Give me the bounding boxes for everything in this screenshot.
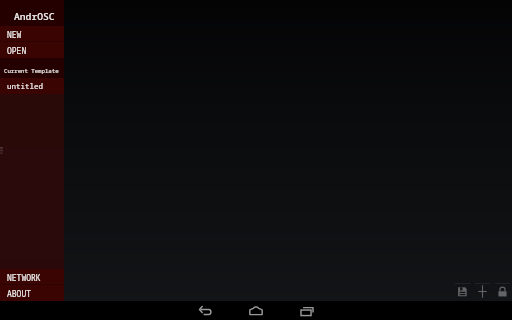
staticText: NETWORK	[7, 272, 41, 283]
button[interactable]: Home	[248, 301, 264, 320]
button[interactable]: Recents	[299, 301, 315, 320]
staticText: AndrOSC	[14, 10, 55, 23]
button[interactable]: OPEN	[0, 42, 64, 58]
button[interactable]: untitled	[0, 78, 64, 94]
staticText: ABOUT	[7, 288, 31, 299]
staticText: untitled	[7, 81, 43, 91]
button[interactable]: NEW	[0, 26, 64, 42]
button[interactable]: NETWORK	[0, 269, 64, 285]
staticText: Current Template	[4, 67, 59, 75]
staticText: NEW	[7, 29, 22, 40]
button[interactable]: Back	[197, 301, 213, 320]
button[interactable]: ABOUT	[0, 285, 64, 301]
button[interactable]: Add	[472, 282, 492, 301]
staticText: OPEN	[7, 45, 27, 56]
button[interactable]: Save	[452, 282, 472, 301]
button[interactable]: Lock	[492, 282, 512, 301]
